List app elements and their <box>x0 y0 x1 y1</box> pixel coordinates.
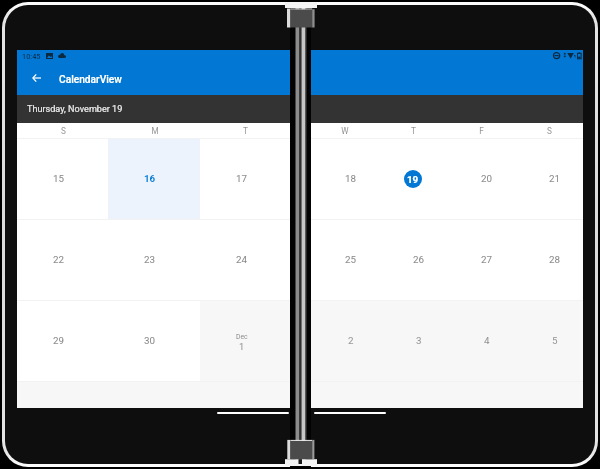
button[interactable]: 26 <box>379 219 447 300</box>
staticText: 26 <box>413 254 425 265</box>
staticText: 4 <box>484 335 490 346</box>
staticText: M <box>151 126 159 136</box>
staticText: 2 <box>348 335 354 346</box>
staticText: 17 <box>236 173 248 184</box>
staticText: W <box>341 126 349 136</box>
button[interactable]: 4 <box>447 300 515 381</box>
button[interactable]: 5 <box>515 300 583 381</box>
button[interactable]: 15 <box>17 138 108 219</box>
staticText: 20 <box>481 173 493 184</box>
button[interactable]: 17 <box>200 138 291 219</box>
staticText: T <box>243 126 248 136</box>
staticText: 27 <box>481 254 493 265</box>
staticText: 1 <box>239 341 245 352</box>
button[interactable]: Dec <box>200 300 291 381</box>
button[interactable]: 19 <box>379 138 447 219</box>
staticText: 29 <box>53 335 65 346</box>
staticText: 21 <box>549 173 561 184</box>
staticText: 18 <box>345 173 357 184</box>
button[interactable]: Navigate up <box>26 67 47 88</box>
staticText: 10:45 <box>22 52 41 61</box>
button[interactable]: 3 <box>379 300 447 381</box>
button[interactable]: 27 <box>447 219 515 300</box>
staticText: S <box>61 126 66 136</box>
staticText: 24 <box>236 254 248 265</box>
staticText: 15 <box>53 173 65 184</box>
button[interactable]: 16 <box>108 138 199 219</box>
staticText: T <box>411 126 416 136</box>
staticText: 25 <box>345 254 357 265</box>
staticText: 19 <box>407 174 419 185</box>
staticText: 30 <box>144 335 156 346</box>
button[interactable]: 22 <box>17 219 108 300</box>
button[interactable]: 23 <box>108 219 199 300</box>
staticText: 22 <box>53 254 65 265</box>
staticText: S <box>547 126 552 136</box>
button[interactable]: 29 <box>17 300 108 381</box>
button[interactable]: 25 <box>311 219 379 300</box>
button[interactable]: 30 <box>108 300 199 381</box>
staticText: F <box>479 126 484 136</box>
staticText: 3 <box>416 335 422 346</box>
staticText: 28 <box>549 254 561 265</box>
button[interactable]: 28 <box>515 219 583 300</box>
staticText: 5 <box>552 335 558 346</box>
staticText: Thursday, November 19 <box>27 104 123 115</box>
staticText: Dec <box>236 333 248 341</box>
button[interactable]: 18 <box>311 138 379 219</box>
button[interactable]: 24 <box>200 219 291 300</box>
button[interactable]: 20 <box>447 138 515 219</box>
staticText: 23 <box>144 254 156 265</box>
button[interactable]: 2 <box>311 300 379 381</box>
staticText: CalendarView <box>59 74 122 86</box>
staticText: 16 <box>144 173 156 184</box>
button[interactable]: 21 <box>515 138 583 219</box>
